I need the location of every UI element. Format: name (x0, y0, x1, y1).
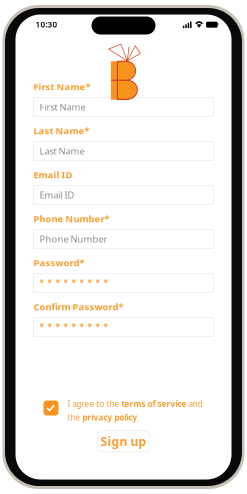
staticText: Last Name* (33, 124, 89, 137)
staticText: Sign up (100, 433, 146, 449)
staticText: Password* (33, 256, 84, 269)
button[interactable]: Sign up (97, 431, 149, 452)
staticText: First Name* (33, 80, 90, 93)
button[interactable]: Phone Number (33, 229, 213, 248)
button[interactable]: First Name (33, 97, 213, 116)
staticText: privacy policy (82, 412, 137, 423)
staticText: * * * * * * * * * (39, 278, 107, 288)
button[interactable]: Last Name (33, 141, 213, 160)
staticText: First Name (39, 101, 85, 113)
staticText: Email ID (33, 168, 72, 181)
staticText: and (186, 398, 202, 409)
button[interactable]: * * * * * * * * * (33, 317, 213, 336)
button[interactable]: I agree to the (15, 336, 231, 423)
staticText: Last Name (39, 145, 84, 157)
staticText: Phone Number (39, 233, 107, 245)
staticText: Confirm Password* (33, 300, 123, 313)
staticText: terms of service (121, 398, 186, 409)
staticText: Phone Number* (33, 212, 109, 225)
staticText: * * * * * * * * * (39, 322, 107, 332)
button[interactable]: * * * * * * * * * (33, 273, 213, 292)
staticText: the (67, 412, 82, 423)
staticText: I agree to the (67, 398, 121, 409)
staticText: 10:30 (35, 19, 57, 30)
staticText: . (137, 412, 139, 423)
staticText: Email ID (39, 189, 74, 201)
button[interactable]: Email ID (33, 185, 213, 204)
